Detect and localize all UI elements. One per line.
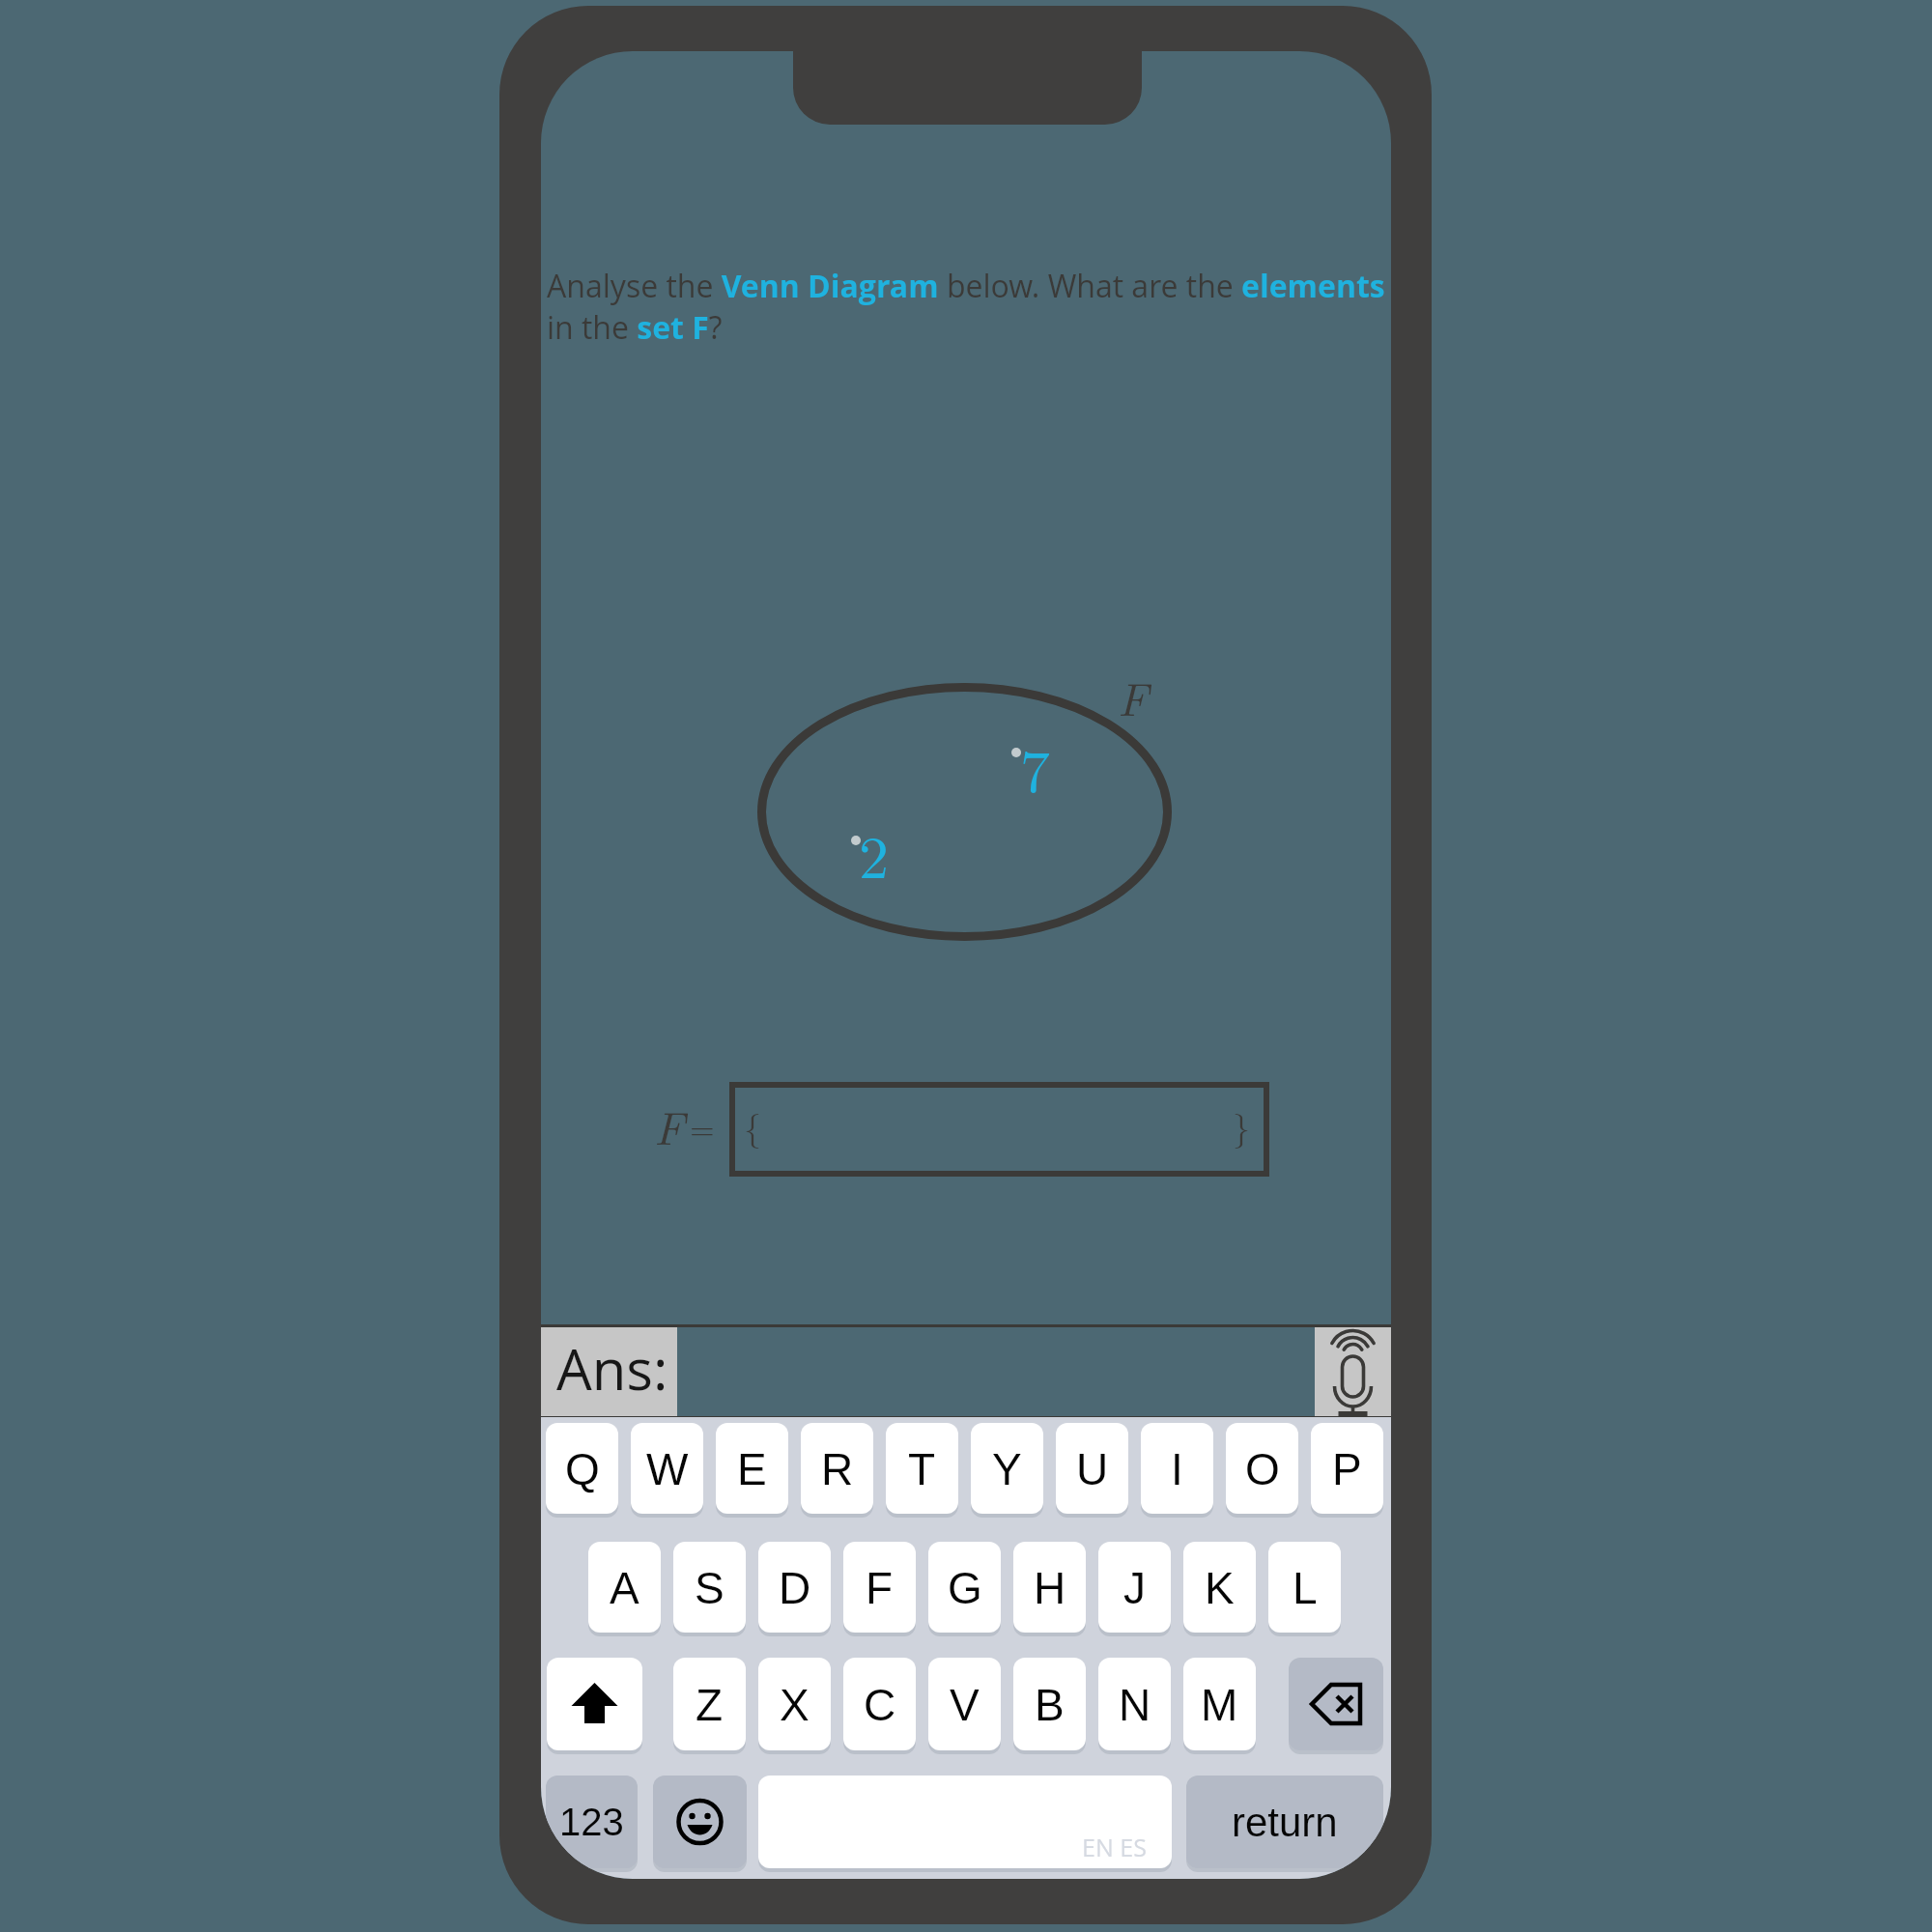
button[interactable]: Shift xyxy=(547,1658,642,1750)
button[interactable]: D xyxy=(758,1542,831,1633)
staticText: U xyxy=(1076,1444,1109,1493)
staticText: Z xyxy=(696,1680,724,1729)
staticText: G xyxy=(948,1563,982,1612)
button[interactable]: X xyxy=(758,1658,831,1750)
staticText: EN ES xyxy=(1082,1831,1147,1863)
staticText: 2 xyxy=(859,810,890,895)
staticText: return xyxy=(1232,1800,1338,1845)
button[interactable]: Z xyxy=(673,1658,746,1750)
staticText: I xyxy=(1171,1444,1183,1493)
button[interactable]: I xyxy=(1141,1423,1213,1514)
button[interactable]: Backspace xyxy=(1289,1658,1383,1750)
button[interactable]: R xyxy=(801,1423,873,1514)
button[interactable]: B xyxy=(1013,1658,1086,1750)
button[interactable]: Ans: xyxy=(541,1327,677,1416)
staticText: 7 xyxy=(1020,724,1051,810)
button[interactable]: G xyxy=(928,1542,1001,1633)
button[interactable]: J xyxy=(1098,1542,1171,1633)
staticText: } xyxy=(1233,1100,1250,1150)
button[interactable]: V xyxy=(928,1658,1001,1750)
button[interactable]: N xyxy=(1098,1658,1171,1750)
button[interactable]: S xyxy=(673,1542,746,1633)
staticText: P xyxy=(1332,1444,1362,1493)
button[interactable]: C xyxy=(843,1658,916,1750)
staticText: V xyxy=(950,1680,980,1729)
button[interactable]: { xyxy=(729,1082,1269,1177)
staticText: Analyse the Venn Diagram below. What are… xyxy=(547,265,1390,348)
staticText: O xyxy=(1245,1444,1280,1493)
staticText: R xyxy=(821,1444,854,1493)
staticText: N xyxy=(1119,1680,1151,1729)
button[interactable]: Space xyxy=(758,1776,1172,1868)
staticText: E xyxy=(737,1444,767,1493)
staticText: J xyxy=(1123,1563,1146,1612)
button[interactable]: L xyxy=(1268,1542,1341,1633)
button[interactable]: Y xyxy=(971,1423,1043,1514)
staticText: A xyxy=(610,1563,639,1612)
staticText: L xyxy=(1293,1563,1318,1612)
button[interactable]: E xyxy=(716,1423,788,1514)
button[interactable]: P xyxy=(1311,1423,1383,1514)
staticText: F xyxy=(1118,664,1149,729)
button[interactable]: W xyxy=(631,1423,703,1514)
staticText: B xyxy=(1035,1680,1065,1729)
staticText: H xyxy=(1034,1563,1066,1612)
staticText: { xyxy=(744,1100,761,1150)
staticText: T xyxy=(908,1444,936,1493)
staticText: M xyxy=(1201,1680,1238,1729)
button[interactable]: K xyxy=(1183,1542,1256,1633)
button[interactable]: H xyxy=(1013,1542,1086,1633)
staticText: X xyxy=(780,1680,810,1729)
staticText: Ans: xyxy=(556,1330,668,1406)
button[interactable]: 123 xyxy=(546,1776,638,1868)
staticText: F xyxy=(654,1093,685,1158)
staticText: D xyxy=(779,1563,811,1612)
button[interactable]: F xyxy=(843,1542,916,1633)
staticText: Q xyxy=(565,1444,600,1493)
button[interactable]: T xyxy=(886,1423,958,1514)
staticText: Y xyxy=(992,1444,1022,1493)
staticText: S xyxy=(695,1563,724,1612)
staticText: = xyxy=(690,1104,715,1150)
button[interactable]: return xyxy=(1186,1776,1383,1868)
button[interactable]: Emoji xyxy=(653,1776,747,1868)
button[interactable]: A xyxy=(588,1542,661,1633)
button[interactable]: M xyxy=(1183,1658,1256,1750)
button[interactable]: Voice input xyxy=(1315,1327,1391,1416)
staticText: 123 xyxy=(559,1801,624,1844)
staticText: C xyxy=(864,1680,896,1729)
staticText: F xyxy=(866,1563,894,1612)
staticText: K xyxy=(1205,1563,1235,1612)
button[interactable]: U xyxy=(1056,1423,1128,1514)
button[interactable]: Q xyxy=(546,1423,618,1514)
button[interactable]: O xyxy=(1226,1423,1298,1514)
staticText: W xyxy=(646,1444,689,1493)
